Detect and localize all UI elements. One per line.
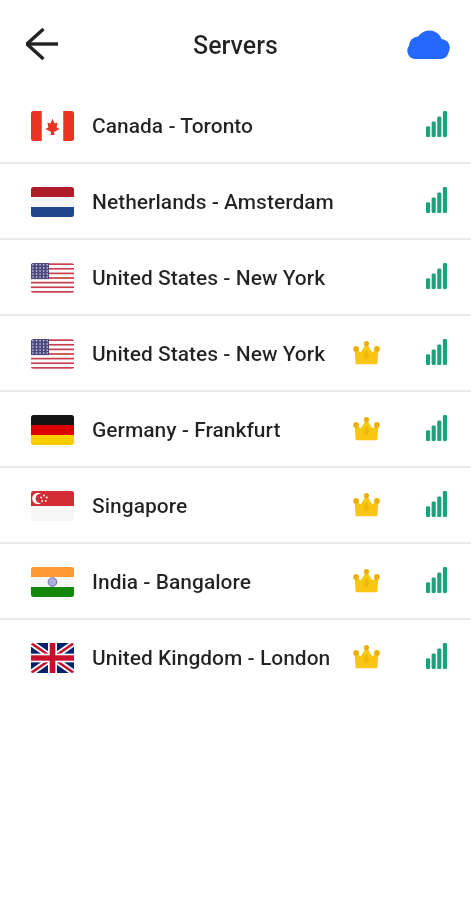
staticText: Netherlands - Amsterdam	[92, 190, 334, 215]
button[interactable]: Singapore	[0, 468, 471, 544]
staticText: Canada - Toronto	[92, 114, 253, 139]
button[interactable]: United Kingdom - London	[0, 620, 471, 696]
staticText: Singapore	[92, 494, 188, 519]
staticText: Germany - Frankfurt	[92, 418, 281, 443]
button[interactable]: Back	[20, 22, 64, 66]
button[interactable]: Canada - Toronto	[0, 88, 471, 164]
button[interactable]: Cloud server	[400, 16, 456, 72]
button[interactable]: Netherlands - Amsterdam	[0, 164, 471, 240]
button[interactable]: United States - New York	[0, 240, 471, 316]
button[interactable]: Germany - Frankfurt	[0, 392, 471, 468]
staticText: India - Bangalore	[92, 570, 251, 595]
staticText: United States - New York	[92, 342, 326, 367]
staticText: Servers	[193, 31, 278, 60]
staticText: United States - New York	[92, 266, 326, 291]
button[interactable]: India - Bangalore	[0, 544, 471, 620]
button[interactable]: United States - New York	[0, 316, 471, 392]
staticText: United Kingdom - London	[92, 646, 331, 671]
